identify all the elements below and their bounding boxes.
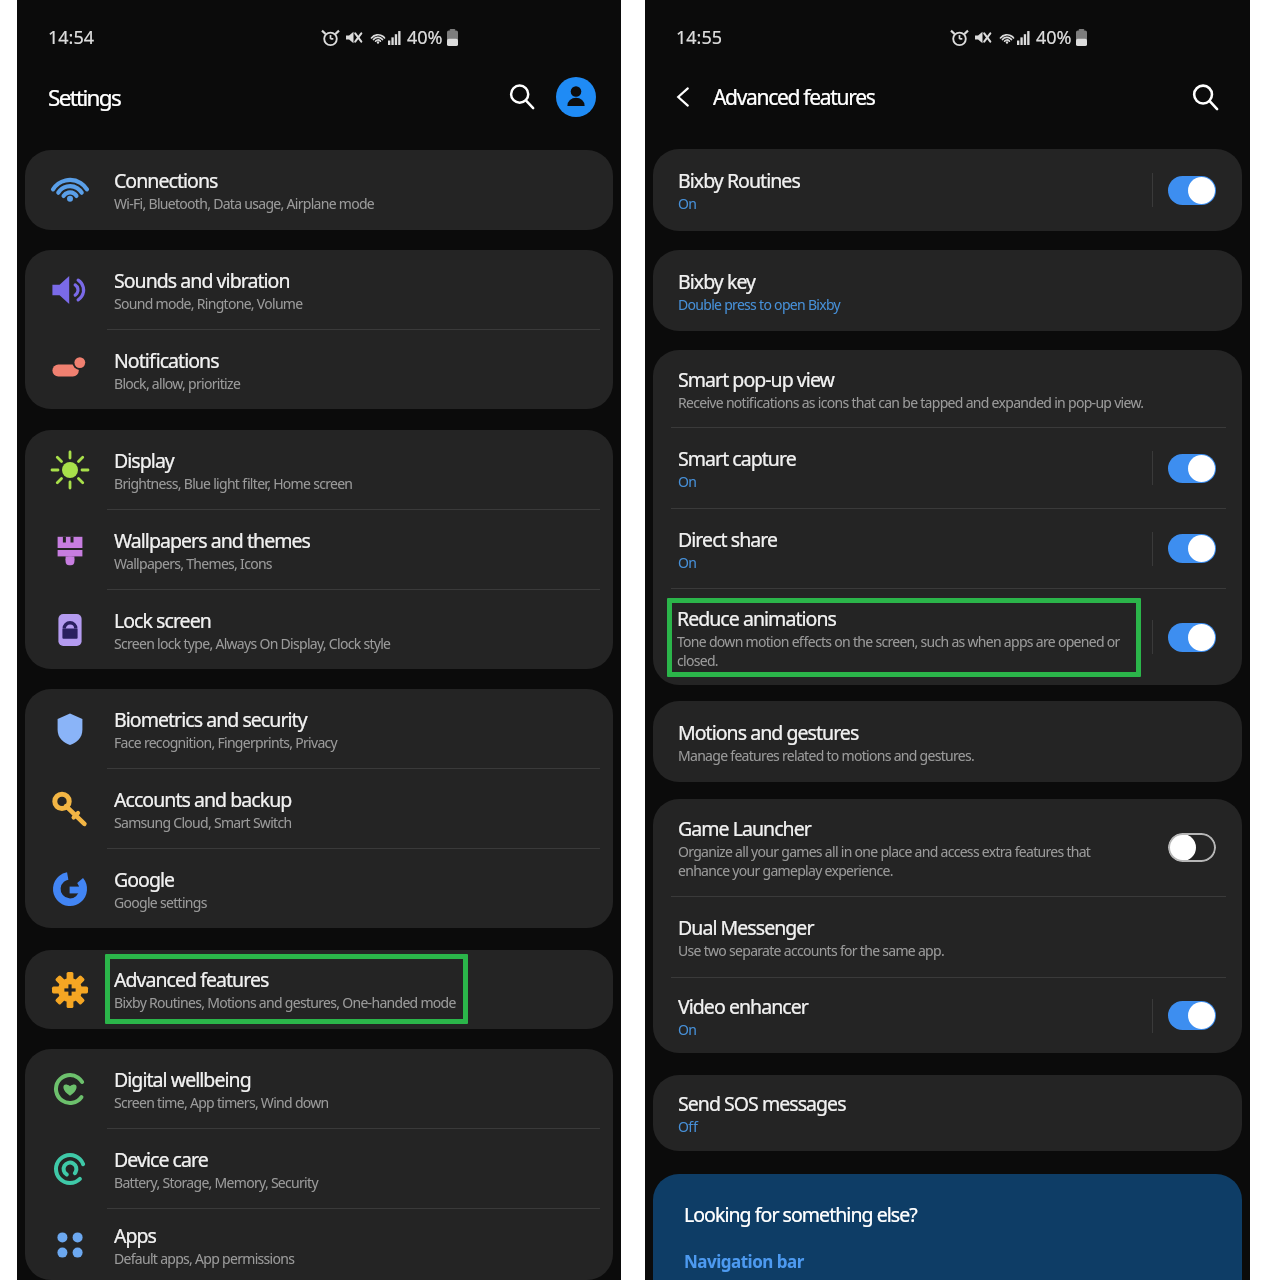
staticText: Off [678, 1117, 698, 1136]
button[interactable]: Bixby key [653, 250, 1242, 331]
staticText: Screen time, App timers, Wind down [114, 1093, 329, 1112]
button[interactable]: Advanced features [25, 950, 613, 1029]
staticText: Google settings [114, 893, 207, 912]
staticText: Smart capture [678, 445, 796, 472]
staticText: Brightness, Blue light filter, Home scre… [114, 474, 353, 493]
staticText: Sounds and vibration [114, 267, 290, 294]
button[interactable]: Smart pop-up view [653, 350, 1242, 427]
button[interactable]: Notifications [25, 330, 613, 409]
button[interactable]: Account profile [556, 77, 596, 117]
button[interactable]: Digital wellbeing [25, 1049, 613, 1128]
staticText: Settings [48, 82, 121, 113]
staticText: On [678, 194, 697, 213]
staticText: Tone down motion effects on the screen, … [677, 632, 1133, 670]
staticText: Digital wellbeing [114, 1066, 251, 1093]
button[interactable]: Apps [25, 1209, 613, 1280]
staticText: Sound mode, Ringtone, Volume [114, 294, 303, 313]
button[interactable]: Game Launcher [653, 799, 1242, 896]
staticText: Accounts and backup [114, 786, 292, 813]
button[interactable]: Send SOS messages [653, 1075, 1242, 1151]
staticText: Dual Messenger [678, 914, 814, 941]
staticText: 14:54 [48, 25, 95, 50]
staticText: Use two separate accounts for the same a… [678, 941, 944, 960]
button[interactable]: Looking for something else? [653, 1174, 1242, 1280]
staticText: Send SOS messages [678, 1090, 846, 1117]
staticText: Wi-Fi, Bluetooth, Data usage, Airplane m… [114, 194, 375, 213]
button[interactable]: Bixby Routines [653, 149, 1242, 231]
button[interactable]: Toggle Direct share [1168, 534, 1216, 563]
button[interactable]: Display [25, 430, 613, 509]
staticText: Bixby Routines, Motions and gestures, On… [114, 993, 456, 1012]
button[interactable]: Device care [25, 1129, 613, 1208]
staticText: Screen lock type, Always On Display, Clo… [114, 634, 391, 653]
staticText: Advanced features [713, 83, 875, 112]
staticText: On [678, 1020, 697, 1039]
staticText: Face recognition, Fingerprints, Privacy [114, 733, 338, 752]
staticText: Direct share [678, 526, 777, 553]
button[interactable]: Biometrics and security [25, 689, 613, 768]
staticText: Display [114, 447, 174, 474]
staticText: Organize all your games all in one place… [678, 842, 1099, 880]
staticText: Block, allow, prioritize [114, 374, 241, 393]
button[interactable]: Google [25, 849, 613, 928]
staticText: Apps [114, 1222, 156, 1249]
staticText: Wallpapers, Themes, Icons [114, 554, 272, 573]
button[interactable]: Toggle Video enhancer [1168, 1001, 1216, 1030]
staticText: On [678, 553, 697, 572]
staticText: Battery, Storage, Memory, Security [114, 1173, 318, 1192]
button[interactable]: Toggle Smart capture [1168, 454, 1216, 483]
staticText: Bixby key [678, 268, 756, 295]
staticText: Device care [114, 1146, 208, 1173]
staticText: Motions and gestures [678, 719, 859, 746]
staticText: Notifications [114, 347, 219, 374]
staticText: Manage features related to motions and g… [678, 746, 975, 765]
staticText: Smart pop-up view [678, 366, 834, 393]
staticText: Reduce animations [677, 605, 836, 632]
button[interactable]: Reduce animations [653, 589, 1242, 685]
staticText: Default apps, App permissions [114, 1249, 295, 1268]
staticText: Double press to open Bixby [678, 295, 840, 314]
button[interactable]: Toggle Game Launcher [1168, 833, 1216, 862]
button[interactable]: Sounds and vibration [25, 250, 613, 329]
button[interactable]: Video enhancer [653, 978, 1242, 1053]
staticText: Wallpapers and themes [114, 527, 310, 554]
staticText: On [678, 472, 697, 491]
staticText: Google [114, 866, 175, 893]
staticText: 40% [407, 25, 443, 50]
staticText: Navigation bar [684, 1250, 804, 1273]
staticText: Lock screen [114, 607, 211, 634]
button[interactable]: Motions and gestures [653, 701, 1242, 782]
staticText: Video enhancer [678, 993, 808, 1020]
button[interactable]: Accounts and backup [25, 769, 613, 848]
button[interactable]: Back [661, 75, 705, 119]
button[interactable]: Lock screen [25, 590, 613, 669]
button[interactable]: Toggle Bixby Routines [1168, 176, 1216, 205]
staticText: Looking for something else? [684, 1201, 917, 1228]
staticText: Connections [114, 167, 218, 194]
button[interactable]: Connections [25, 150, 613, 230]
button[interactable]: Toggle Reduce animations [1168, 623, 1216, 652]
staticText: Biometrics and security [114, 706, 307, 733]
staticText: 40% [1036, 25, 1072, 50]
button[interactable]: Navigation bar [684, 1250, 804, 1273]
staticText: 14:55 [676, 25, 723, 50]
button[interactable]: Smart capture [653, 428, 1242, 508]
button[interactable]: Dual Messenger [653, 897, 1242, 977]
button[interactable]: Search [499, 74, 545, 120]
button[interactable]: Direct share [653, 509, 1242, 588]
button[interactable]: Search [1182, 74, 1228, 120]
staticText: Bixby Routines [678, 167, 800, 194]
staticText: Advanced features [114, 966, 269, 993]
staticText: Samsung Cloud, Smart Switch [114, 813, 292, 832]
staticText: Receive notifications as icons that can … [678, 393, 1144, 412]
staticText: Game Launcher [678, 815, 811, 842]
button[interactable]: Wallpapers and themes [25, 510, 613, 589]
